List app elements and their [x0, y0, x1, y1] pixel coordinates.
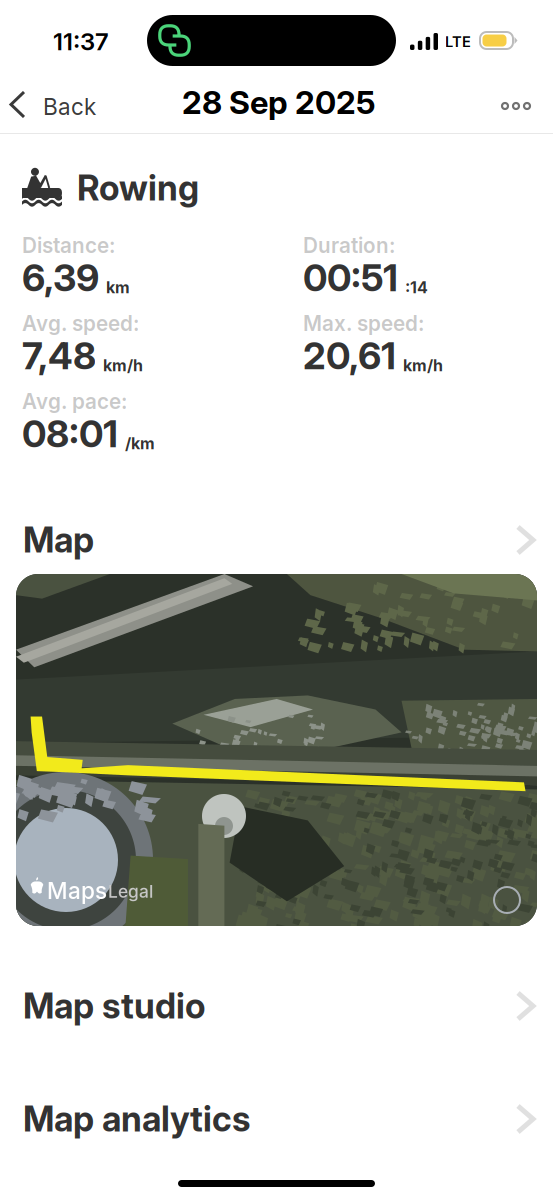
staticText: km [106, 278, 130, 297]
staticText: Map [23, 519, 94, 561]
button[interactable]: More options [0, 0, 83, 50]
staticText: 7,48 [22, 333, 96, 378]
staticText: Map analytics [23, 1098, 250, 1140]
staticText: Legal [108, 881, 153, 902]
staticText: Map studio [23, 985, 205, 1027]
staticText: Distance: [22, 233, 115, 258]
staticText: Avg. pace: [22, 389, 127, 414]
staticText: km/h [103, 356, 143, 375]
staticText: :14 [405, 278, 428, 297]
staticText: /km [125, 434, 155, 453]
staticText: Max. speed: [303, 311, 424, 336]
button[interactable]: Map studio [0, 984, 553, 1028]
staticText: 00:51 [303, 255, 398, 300]
staticText: 6,39 [22, 255, 99, 300]
button[interactable]: Map [0, 518, 553, 562]
button[interactable]: Back [0, 0, 110, 52]
staticText: 08:01 [22, 411, 118, 456]
staticText: LTE [445, 33, 471, 51]
button[interactable]: Map analytics [0, 1097, 553, 1141]
staticText: Maps [47, 877, 107, 904]
staticText: 28 Sep 2025 [182, 83, 376, 122]
staticText: 20,61 [303, 333, 396, 378]
staticText: Duration: [303, 233, 395, 258]
staticText: Back [43, 93, 96, 120]
staticText: Rowing [77, 167, 199, 209]
staticText: Avg. speed: [22, 311, 139, 336]
staticText: 11:37 [53, 27, 109, 56]
staticText: km/h [403, 356, 443, 375]
button[interactable]: Map of the route [16, 574, 537, 926]
